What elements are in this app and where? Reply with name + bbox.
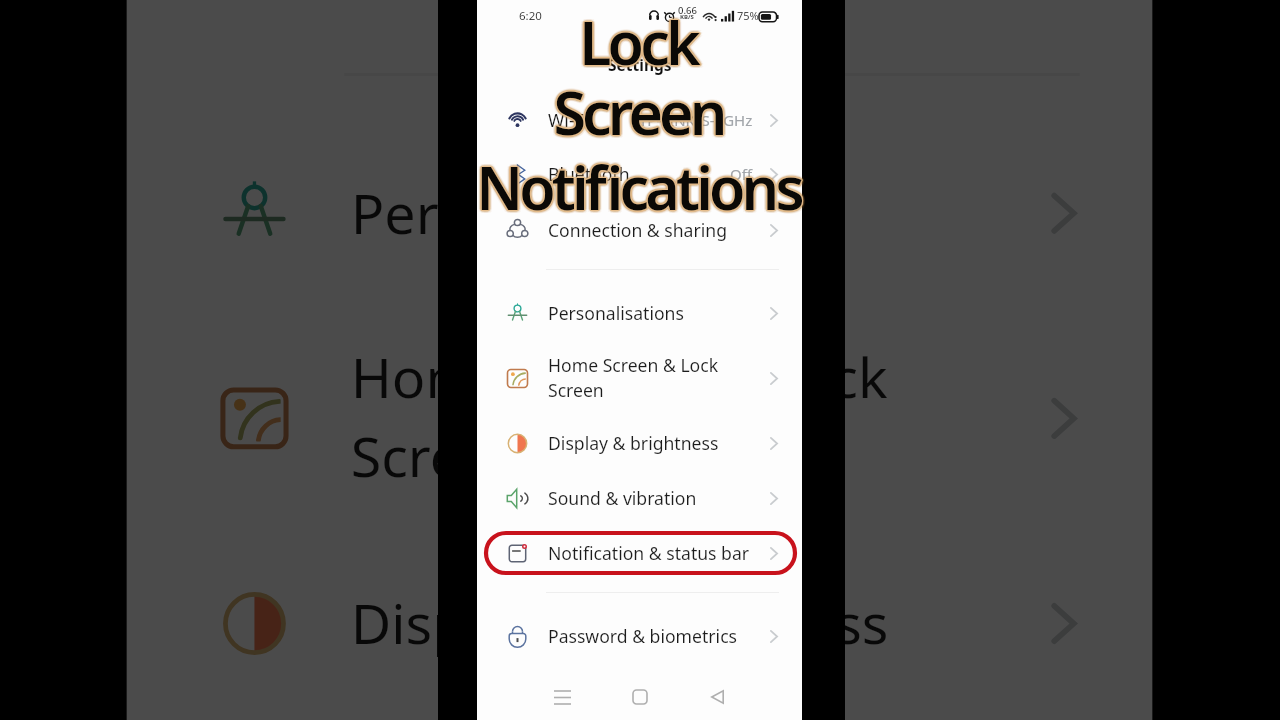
staticText: TP-LINK_S-5GHz bbox=[639, 110, 753, 130]
staticText: Notifications bbox=[473, 149, 798, 229]
staticText: Display & brightness bbox=[351, 584, 890, 660]
button[interactable]: Notification & status bar bbox=[477, 529, 802, 577]
staticText: Screen bbox=[553, 73, 724, 153]
staticText: Notifications bbox=[478, 147, 803, 227]
staticText: Lock bbox=[579, 3, 697, 83]
button[interactable]: Recent apps bbox=[548, 683, 576, 711]
staticText: Lock bbox=[580, 3, 698, 83]
staticText: Notifications bbox=[477, 148, 802, 228]
staticText: Lock bbox=[577, 3, 695, 83]
staticText: Notifications bbox=[476, 144, 801, 224]
staticText: Lock bbox=[578, 3, 696, 83]
staticText: Notifications bbox=[475, 147, 800, 227]
staticText: Lock bbox=[581, 2, 699, 82]
staticText: Notifications bbox=[476, 146, 801, 226]
staticText: Lock bbox=[579, 1, 697, 81]
staticText: Notifications bbox=[476, 148, 801, 228]
staticText: Screen bbox=[552, 72, 723, 152]
staticText: Notifications bbox=[475, 145, 800, 225]
staticText: Lock bbox=[580, 1, 698, 81]
staticText: Lock bbox=[581, 1, 699, 81]
staticText: Notifications bbox=[475, 146, 800, 226]
button[interactable]: Sound & vibration bbox=[477, 474, 802, 522]
staticText: Notifications bbox=[477, 149, 802, 229]
button[interactable]: Display & brightness bbox=[477, 419, 802, 467]
button[interactable]: Back bbox=[703, 683, 731, 711]
button[interactable]: Home bbox=[626, 683, 654, 711]
staticText: Home Screen & Lock Screen bbox=[351, 338, 912, 496]
staticText: Screen bbox=[553, 70, 724, 150]
staticText: Lock bbox=[578, 1, 696, 81]
button[interactable]: Wi-Fi bbox=[477, 96, 802, 144]
staticText: Notifications bbox=[476, 147, 801, 227]
staticText: Home Screen & Lock Screen bbox=[548, 353, 726, 403]
staticText: Screen bbox=[551, 73, 722, 153]
staticText: Lock bbox=[578, 2, 696, 82]
button[interactable]: Bluetooth bbox=[477, 150, 802, 198]
staticText: Bluetooth bbox=[548, 162, 630, 186]
staticText: Lock bbox=[581, 0, 699, 79]
staticText: Screen bbox=[552, 74, 723, 154]
staticText: Screen bbox=[552, 70, 723, 150]
staticText: Lock bbox=[578, 0, 696, 79]
staticText: Screen bbox=[554, 72, 725, 152]
button[interactable]: Home Screen & Lock Screen bbox=[477, 348, 802, 408]
button[interactable]: Password & biometrics bbox=[477, 612, 802, 660]
staticText: Notifications bbox=[477, 147, 802, 227]
staticText: Notifications bbox=[477, 147, 802, 227]
staticText: Notifications bbox=[476, 146, 801, 226]
staticText: Notifications bbox=[478, 144, 803, 224]
staticText: Notifications bbox=[478, 146, 803, 226]
staticText: Notifications bbox=[478, 150, 803, 230]
staticText: Screen bbox=[554, 74, 725, 154]
staticText: Notifications bbox=[475, 148, 800, 228]
staticText: Notifications bbox=[476, 148, 801, 228]
staticText: Password & biometrics bbox=[548, 624, 738, 648]
staticText: Screen bbox=[553, 71, 724, 151]
staticText: Lock bbox=[580, 4, 698, 84]
staticText: Screen bbox=[554, 72, 725, 152]
staticText: Notifications bbox=[475, 146, 800, 226]
staticText: Lock bbox=[576, 2, 694, 82]
staticText: Wi-Fi bbox=[548, 108, 589, 132]
staticText: Notifications bbox=[475, 147, 800, 227]
button[interactable]: Connection & sharing bbox=[477, 206, 802, 254]
button[interactable]: Personalisations bbox=[477, 289, 802, 337]
staticText: Notifications bbox=[479, 149, 804, 229]
staticText: Notifications bbox=[477, 148, 802, 228]
staticText: Screen bbox=[553, 71, 724, 151]
staticText: Screen bbox=[555, 69, 726, 149]
staticText: Screen bbox=[556, 72, 727, 152]
staticText: Notifications bbox=[477, 147, 802, 227]
staticText: Notifications bbox=[477, 145, 802, 225]
staticText: Lock bbox=[578, 1, 696, 81]
staticText: 6:20 bbox=[519, 8, 542, 24]
staticText: Screen bbox=[554, 71, 725, 151]
staticText: Lock bbox=[579, 0, 697, 79]
staticText: Lock bbox=[576, 1, 694, 81]
staticText: Screen bbox=[551, 72, 722, 152]
staticText: Lock bbox=[580, 2, 698, 82]
staticText: Notifications bbox=[477, 147, 802, 227]
staticText: Screen bbox=[550, 71, 721, 151]
staticText: Notifications bbox=[476, 148, 801, 228]
staticText: Screen bbox=[552, 72, 723, 152]
staticText: Lock bbox=[577, 1, 695, 81]
staticText: Notifications bbox=[476, 150, 801, 230]
staticText: Lock bbox=[580, 3, 698, 83]
staticText: Screen bbox=[554, 72, 725, 152]
staticText: Lock bbox=[579, 0, 697, 80]
staticText: Off bbox=[730, 164, 753, 184]
staticText: Notifications bbox=[476, 145, 801, 225]
staticText: Notifications bbox=[474, 146, 799, 226]
staticText: Personalisations bbox=[548, 301, 684, 325]
staticText: Screen bbox=[555, 75, 726, 155]
staticText: Screen bbox=[556, 71, 727, 151]
staticText: Lock bbox=[578, 5, 696, 85]
staticText: Notifications bbox=[473, 147, 798, 227]
staticText: Notifications bbox=[477, 146, 802, 226]
staticText: Lock bbox=[580, 2, 698, 82]
staticText: Notifications bbox=[475, 149, 800, 229]
staticText: Screen bbox=[553, 73, 724, 153]
staticText: Screen bbox=[552, 73, 723, 153]
